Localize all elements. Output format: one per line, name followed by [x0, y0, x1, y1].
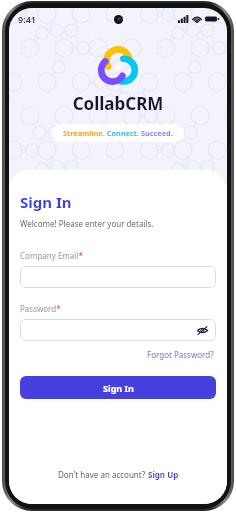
button[interactable]: Show password: [20, 319, 216, 341]
staticText: Sign Up: [148, 469, 179, 480]
staticText: Don't have an account?: [58, 469, 148, 480]
staticText: Forgot Password?: [147, 349, 214, 360]
button[interactable]: [20, 266, 216, 288]
staticText: Sign In: [20, 192, 72, 212]
staticText: Company Email*: [20, 250, 83, 261]
other: Show password: [196, 324, 209, 337]
staticText: Welcome! Please enter your details.: [20, 218, 154, 229]
staticText: CollabCRM: [9, 92, 227, 115]
staticText: Password*: [20, 303, 61, 314]
button[interactable]: Sign In: [20, 376, 216, 399]
staticText: Sign In: [103, 382, 134, 394]
button[interactable]: Forgot Password?: [145, 348, 216, 361]
staticText: 9:41: [18, 13, 36, 25]
staticText: Streamline. Connect. Succeed.: [63, 128, 173, 138]
button[interactable]: Don't have an account?: [20, 469, 216, 480]
